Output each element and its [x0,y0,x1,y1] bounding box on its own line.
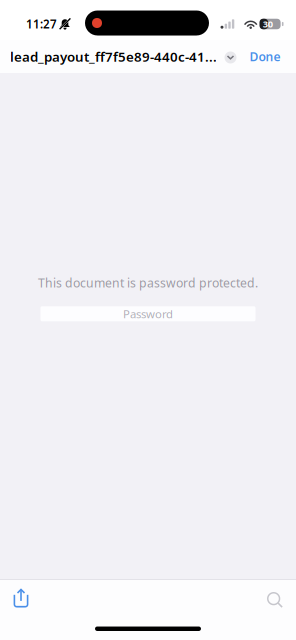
button[interactable]: Done [246,40,283,72]
staticText: 30 [263,18,273,30]
staticText: 11:27 [26,16,57,32]
button[interactable]: Document options [221,40,240,72]
button[interactable]: Share [0,582,42,618]
staticText: Done [249,48,280,65]
button[interactable]: Password [40,306,255,321]
button[interactable]: Search [254,582,296,618]
staticText: This document is password protected. [38,274,258,291]
staticText: lead_payout_ff7f5e89-440c-41... [10,47,217,66]
staticText: Password [123,306,173,321]
